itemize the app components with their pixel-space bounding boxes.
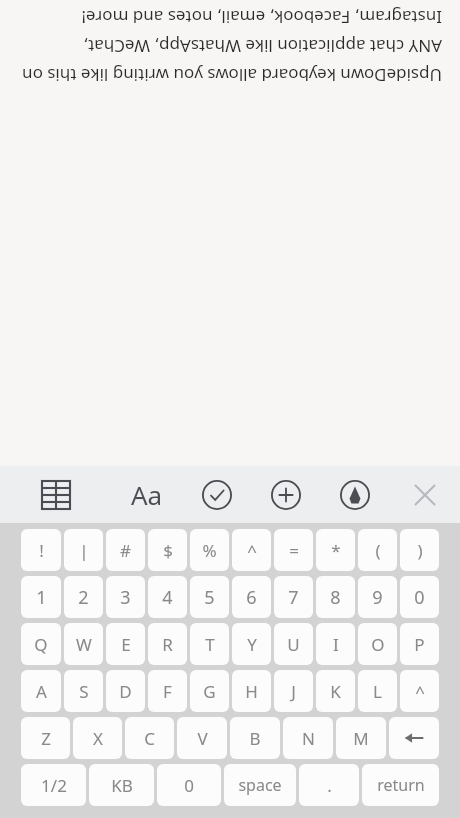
button[interactable]: !	[21, 529, 61, 571]
button[interactable]: X	[73, 717, 122, 759]
staticText: M	[353, 727, 369, 750]
button[interactable]: return	[362, 764, 439, 806]
staticText: K	[330, 680, 341, 703]
staticText: 3	[120, 585, 131, 610]
button[interactable]: R	[148, 623, 187, 665]
staticText: L	[373, 680, 382, 703]
button[interactable]: 2	[64, 576, 103, 618]
button[interactable]: =	[274, 529, 313, 571]
button[interactable]: Q	[21, 623, 61, 665]
button[interactable]: Text format	[112, 466, 182, 523]
staticText: 1	[36, 585, 47, 610]
button[interactable]: S	[64, 670, 103, 712]
button[interactable]: F	[148, 670, 187, 712]
staticText: F	[163, 680, 172, 703]
button[interactable]: 4	[148, 576, 187, 618]
button[interactable]: V	[177, 717, 227, 759]
staticText: 5	[204, 585, 215, 610]
staticText: A	[36, 680, 47, 703]
button[interactable]: .	[299, 764, 359, 806]
button[interactable]: 1	[21, 576, 61, 618]
button[interactable]: $	[148, 529, 187, 571]
staticText: I	[333, 633, 339, 656]
button[interactable]: Z	[21, 717, 70, 759]
button[interactable]: Add	[251, 466, 320, 523]
button[interactable]: KB	[89, 764, 154, 806]
staticText: =	[289, 539, 299, 562]
staticText: return	[377, 774, 425, 796]
button[interactable]: 8	[316, 576, 355, 618]
button[interactable]: Draw	[320, 466, 390, 523]
staticText: *	[331, 539, 341, 562]
staticText: %	[202, 539, 217, 562]
button[interactable]: M	[336, 717, 386, 759]
staticText: Z	[41, 727, 51, 750]
staticText: P	[414, 633, 425, 656]
button[interactable]: W	[64, 623, 103, 665]
staticText: $	[163, 539, 173, 562]
staticText: O	[371, 633, 385, 656]
staticText: Q	[34, 633, 48, 656]
button[interactable]: G	[190, 670, 229, 712]
button[interactable]: Table	[0, 466, 112, 523]
button[interactable]: space	[224, 764, 296, 806]
staticText: T	[205, 633, 215, 656]
button[interactable]: #	[106, 529, 145, 571]
button[interactable]	[389, 717, 439, 759]
button[interactable]: Y	[232, 623, 271, 665]
button[interactable]: E	[106, 623, 145, 665]
button[interactable]: C	[125, 717, 174, 759]
staticText: space	[238, 774, 282, 796]
staticText: N	[302, 727, 315, 750]
button[interactable]: H	[232, 670, 271, 712]
button[interactable]: 9	[358, 576, 397, 618]
button[interactable]: ^	[400, 670, 439, 712]
staticText: Aa	[131, 477, 163, 512]
staticText: R	[162, 633, 173, 656]
staticText: 0	[414, 585, 425, 610]
button[interactable]: I	[316, 623, 355, 665]
button[interactable]: *	[316, 529, 355, 571]
button[interactable]: 1/2	[21, 764, 86, 806]
button[interactable]: 5	[190, 576, 229, 618]
button[interactable]: D	[106, 670, 145, 712]
button[interactable]: 3	[106, 576, 145, 618]
button[interactable]: 0	[400, 576, 439, 618]
button[interactable]: Confirm	[182, 466, 251, 523]
button[interactable]: )	[400, 529, 439, 571]
staticText: 1/2	[41, 774, 67, 797]
button[interactable]: A	[21, 670, 61, 712]
button[interactable]: T	[190, 623, 229, 665]
staticText: B	[249, 727, 261, 750]
button[interactable]: 0	[157, 764, 221, 806]
button[interactable]: J	[274, 670, 313, 712]
staticText: W	[76, 633, 92, 656]
staticText: #	[120, 539, 131, 562]
button[interactable]: P	[400, 623, 439, 665]
staticText: 0	[184, 774, 194, 797]
button[interactable]: ^	[232, 529, 271, 571]
button[interactable]: UpsideDown keyboard allows you writing l…	[0, 0, 460, 466]
staticText: )	[417, 539, 423, 562]
staticText: UpsideDown keyboard allows you writing l…	[18, 6, 442, 87]
button[interactable]: U	[274, 623, 313, 665]
button[interactable]: N	[283, 717, 333, 759]
button[interactable]: Close	[390, 466, 460, 523]
button[interactable]: (	[358, 529, 397, 571]
button[interactable]: %	[190, 529, 229, 571]
button[interactable]: 6	[232, 576, 271, 618]
button[interactable]: |	[64, 529, 103, 571]
button[interactable]: K	[316, 670, 355, 712]
staticText: KB	[111, 774, 133, 797]
button[interactable]: L	[358, 670, 397, 712]
button[interactable]: 7	[274, 576, 313, 618]
staticText: H	[245, 680, 258, 703]
staticText: J	[291, 680, 296, 703]
staticText: (	[375, 539, 381, 562]
staticText: S	[79, 680, 89, 703]
button[interactable]: B	[230, 717, 280, 759]
button[interactable]: O	[358, 623, 397, 665]
staticText: ^	[415, 680, 425, 703]
staticText: U	[287, 633, 300, 656]
staticText: 9	[372, 585, 383, 610]
